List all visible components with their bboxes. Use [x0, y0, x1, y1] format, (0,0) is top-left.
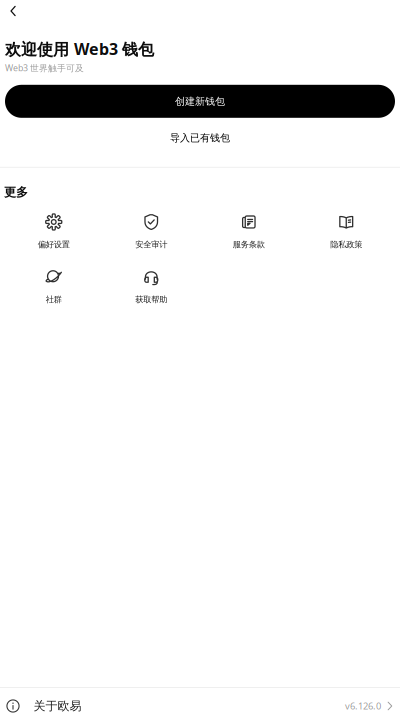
button[interactable]: 返回 — [0, 0, 26, 22]
button[interactable]: 关于欧易 — [0, 688, 400, 720]
staticText: 更多 — [4, 185, 28, 200]
button[interactable]: 服务条款 — [200, 213, 297, 249]
staticText: 获取帮助 — [135, 294, 167, 305]
staticText: 服务条款 — [233, 239, 265, 250]
staticText: 安全审计 — [135, 239, 167, 250]
staticText: 关于欧易 — [33, 698, 81, 713]
button[interactable]: 偏好设置 — [5, 213, 102, 249]
button[interactable]: 社群 — [5, 268, 102, 304]
staticText: 社群 — [46, 294, 62, 305]
button[interactable]: 获取帮助 — [102, 268, 200, 304]
staticText: 隐私政策 — [330, 239, 362, 250]
button[interactable]: 隐私政策 — [297, 213, 395, 249]
staticText: 欢迎使用 Web3 钱包 — [5, 38, 154, 60]
staticText: 偏好设置 — [38, 239, 70, 250]
staticText: Web3 世界触手可及 — [5, 62, 84, 74]
button[interactable]: 导入已有钱包 — [5, 123, 395, 153]
button[interactable]: 安全审计 — [102, 213, 200, 249]
button[interactable]: 创建新钱包 — [5, 85, 395, 118]
staticText: 导入已有钱包 — [170, 131, 230, 144]
staticText: v6.126.0 — [345, 700, 381, 712]
staticText: 创建新钱包 — [175, 95, 225, 108]
